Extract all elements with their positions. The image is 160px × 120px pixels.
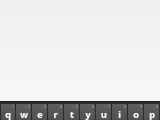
staticText: p bbox=[149, 108, 155, 120]
button[interactable]: Key o bbox=[128, 104, 143, 120]
staticText: w bbox=[20, 108, 28, 120]
staticText: 8 bbox=[123, 104, 126, 109]
button[interactable]: Key e bbox=[32, 104, 47, 120]
staticText: 7 bbox=[107, 104, 110, 109]
staticText: 5 bbox=[75, 104, 78, 109]
button[interactable]: Key y bbox=[80, 104, 95, 120]
button[interactable]: Key i bbox=[112, 104, 127, 120]
staticText: 2 bbox=[27, 104, 30, 109]
button[interactable]: Key t bbox=[64, 104, 79, 120]
staticText: 4 bbox=[59, 104, 62, 109]
staticText: 3 bbox=[43, 104, 46, 109]
staticText: 9 bbox=[139, 104, 142, 109]
staticText: q bbox=[5, 108, 11, 120]
button[interactable]: Key r bbox=[48, 104, 63, 120]
button[interactable]: Key u bbox=[96, 104, 111, 120]
button[interactable]: Key p bbox=[144, 104, 159, 120]
staticText: t bbox=[70, 108, 74, 120]
button[interactable]: Key w bbox=[16, 104, 31, 120]
staticText: 6 bbox=[91, 104, 94, 109]
staticText: r bbox=[53, 108, 58, 120]
staticText: y bbox=[85, 108, 91, 120]
button[interactable]: Key q bbox=[1, 104, 15, 120]
staticText: u bbox=[101, 108, 107, 120]
staticText: 0 bbox=[155, 104, 158, 109]
staticText: 1 bbox=[11, 104, 14, 109]
staticText: o bbox=[133, 108, 139, 120]
staticText: e bbox=[37, 108, 43, 120]
staticText: i bbox=[118, 108, 121, 120]
